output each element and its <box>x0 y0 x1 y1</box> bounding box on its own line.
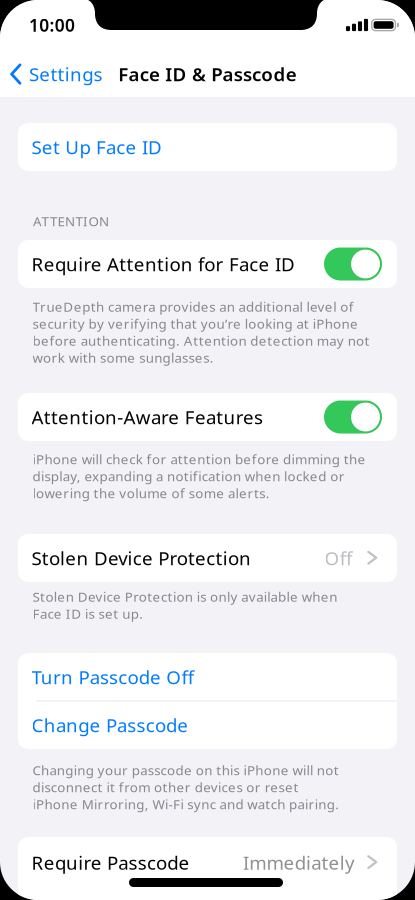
staticText: 10:00 <box>29 13 75 36</box>
staticText: Require Passcode <box>31 850 189 875</box>
staticText: Off <box>325 546 352 570</box>
button[interactable]: Set Up Face ID <box>18 123 397 171</box>
staticText: Changing your passcode on this iPhone wi… <box>32 761 339 779</box>
staticText: iPhone Mirroring, Wi-Fi sync and watch p… <box>32 795 339 813</box>
staticText: before authenticating. Attention detecti… <box>32 332 370 349</box>
staticText: Set Up Face ID <box>31 135 162 159</box>
button[interactable]: Require Passcode <box>18 837 397 900</box>
staticText: Attention-Aware Features <box>31 405 263 429</box>
staticText: Stolen Device Protection is only availab… <box>32 588 337 605</box>
staticText: TrueDepth camera provides an additional … <box>32 298 354 315</box>
button[interactable]: Turn Passcode Off <box>18 653 397 701</box>
button[interactable]: Back to Settings <box>10 62 102 86</box>
staticText: Settings <box>29 62 102 86</box>
staticText: Turn Passcode Off <box>31 665 194 689</box>
staticText: Stolen Device Protection <box>31 546 251 570</box>
staticText: work with some sunglasses. <box>32 349 214 366</box>
button[interactable]: Require Attention for Face ID, on <box>324 247 382 280</box>
button[interactable]: Require Attention for Face ID <box>18 240 397 288</box>
button[interactable]: Change Passcode <box>18 701 397 749</box>
staticText: security by verifying that you’re lookin… <box>32 315 358 332</box>
staticText: Face ID is set up. <box>32 605 143 622</box>
staticText: Change Passcode <box>31 713 188 737</box>
staticText: lowering the volume of some alerts. <box>32 484 270 502</box>
button[interactable]: Attention-Aware Features, on <box>324 400 382 433</box>
button[interactable]: Attention-Aware Features <box>18 393 397 441</box>
button[interactable]: Stolen Device Protection <box>18 534 397 582</box>
staticText: ATTENTION <box>33 212 109 230</box>
staticText: disconnect it from other devices or rese… <box>32 778 298 796</box>
staticText: iPhone will check for attention before d… <box>32 450 366 468</box>
staticText: Require Attention for Face ID <box>31 252 295 276</box>
staticText: Immediately <box>243 850 355 875</box>
staticText: display, expanding a notification when l… <box>32 467 345 485</box>
staticText: Face ID & Passcode <box>118 62 297 86</box>
